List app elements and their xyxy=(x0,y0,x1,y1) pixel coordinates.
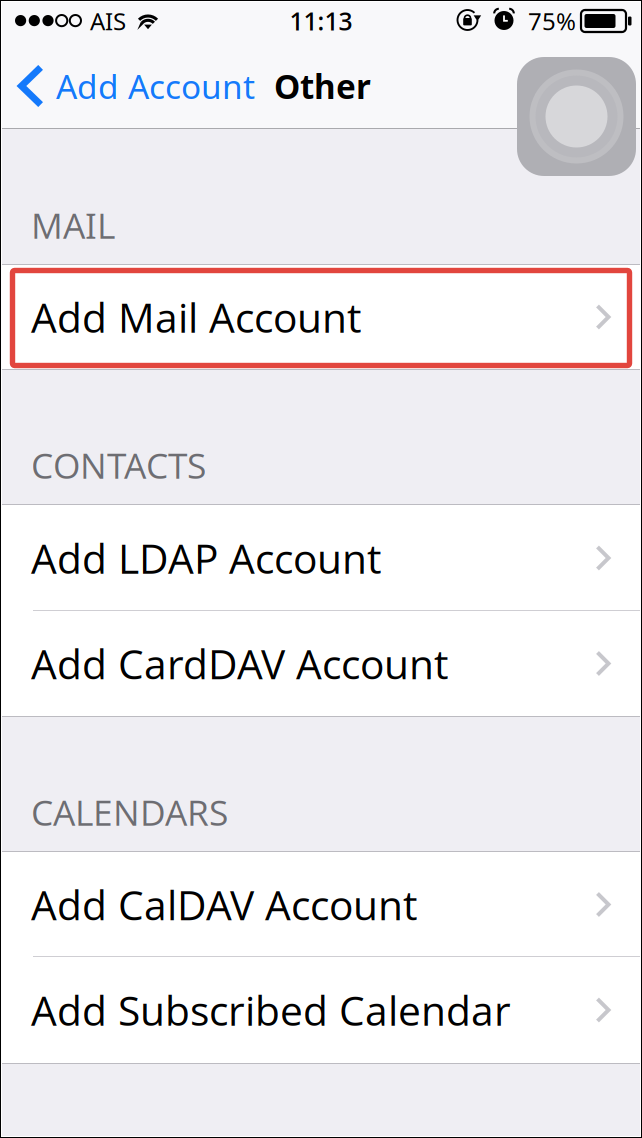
button[interactable]: AssistiveTouch xyxy=(517,57,636,176)
staticText: 75% xyxy=(528,5,576,37)
staticText: AIS xyxy=(90,5,126,37)
staticText: 11:13 xyxy=(289,4,352,38)
staticText: CONTACTS xyxy=(31,441,206,489)
button[interactable]: Add Subscribed Calendar xyxy=(0,957,642,1063)
button[interactable]: Add Account xyxy=(14,43,263,129)
staticText: MAIL xyxy=(31,201,115,249)
button[interactable]: Add LDAP Account xyxy=(0,505,642,611)
button[interactable]: Add CardDAV Account xyxy=(0,611,642,716)
staticText: Add CardDAV Account xyxy=(31,636,449,691)
staticText: Add Subscribed Calendar xyxy=(31,982,511,1038)
button[interactable]: Add Mail Account xyxy=(0,265,642,369)
staticText: Add LDAP Account xyxy=(31,530,382,586)
button[interactable]: Add CalDAV Account xyxy=(0,852,642,957)
staticText: Other xyxy=(274,63,371,109)
staticText: Add Mail Account xyxy=(31,289,362,345)
staticText: Add Account xyxy=(56,63,255,109)
staticText: CALENDARS xyxy=(31,788,228,836)
staticText: Add CalDAV Account xyxy=(31,877,418,932)
